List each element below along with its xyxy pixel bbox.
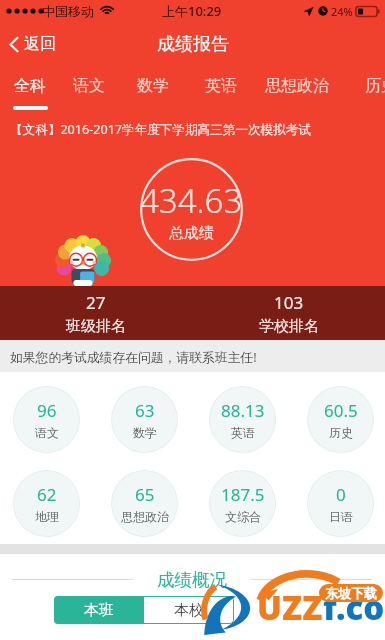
staticText: 东坡下载 <box>325 585 377 601</box>
staticText: U <box>257 585 282 630</box>
button[interactable]: 语文 <box>67 66 111 112</box>
button[interactable]: 全科 <box>8 66 52 112</box>
button[interactable]: 27 <box>0 286 192 340</box>
staticText: 英语 <box>205 76 237 96</box>
staticText: 班级排名 <box>66 317 126 336</box>
button[interactable]: 96 <box>13 386 80 453</box>
staticText: 返回 <box>24 34 56 54</box>
staticText: 【文科】2016-2017学年度下学期高三第一次模拟考试 <box>10 121 311 138</box>
button[interactable]: 65 <box>111 470 178 537</box>
button[interactable]: 103 <box>192 286 385 340</box>
staticText: 27 <box>86 291 106 314</box>
staticText: 成绩报告 <box>157 33 229 56</box>
staticText: 63 <box>135 399 155 422</box>
staticText: 历史 <box>365 76 385 96</box>
button[interactable]: 0 <box>307 470 374 537</box>
staticText: 上午10:29 <box>162 2 222 20</box>
button[interactable]: 62 <box>13 470 80 537</box>
staticText: 文综合 <box>225 509 261 524</box>
staticText: 地理 <box>35 509 59 524</box>
staticText: f.com <box>323 585 385 630</box>
staticText: 语文 <box>73 76 105 96</box>
button[interactable]: 187.5 <box>209 470 276 537</box>
button[interactable]: 返回 <box>0 22 385 66</box>
staticText: 全科 <box>14 76 46 96</box>
staticText: 本班 <box>84 601 114 620</box>
staticText: 数学 <box>133 425 157 440</box>
staticText: 成绩概况 <box>157 569 227 591</box>
button[interactable]: 本班 <box>54 596 144 624</box>
staticText: ZZ <box>282 585 323 630</box>
button[interactable]: 本校 <box>144 596 234 624</box>
button[interactable]: 60.5 <box>307 386 374 453</box>
button[interactable]: 63 <box>111 386 178 453</box>
button[interactable]: 思想政治 <box>263 66 331 112</box>
staticText: 思想政治 <box>265 76 329 96</box>
staticText: 96 <box>37 399 57 422</box>
staticText: 如果您的考试成绩存在问题，请联系班主任! <box>10 348 257 365</box>
staticText: 65 <box>135 483 155 506</box>
staticText: 思想政治 <box>121 509 169 524</box>
staticText: 数学 <box>137 76 169 96</box>
staticText: 88.13 <box>221 399 265 422</box>
staticText: 62 <box>37 483 57 506</box>
staticText: 英语 <box>231 425 255 440</box>
staticText: 语文 <box>35 425 59 440</box>
staticText: 总成绩 <box>169 224 214 243</box>
button[interactable]: 英语 <box>199 66 243 112</box>
staticText: 24% <box>331 4 353 19</box>
staticText: 0 <box>336 483 346 506</box>
staticText: 日语 <box>329 509 353 524</box>
staticText: 103 <box>274 291 304 314</box>
staticText: 中国移动 <box>42 3 94 19</box>
staticText: 本校 <box>174 601 204 620</box>
staticText: 60.5 <box>324 399 358 422</box>
staticText: 187.5 <box>221 483 265 506</box>
staticText: 学校排名 <box>259 317 319 336</box>
button[interactable]: 数学 <box>131 66 175 112</box>
button[interactable]: 88.13 <box>209 386 276 453</box>
staticText: 历史 <box>329 425 353 440</box>
staticText: 434.63 <box>140 178 243 223</box>
button[interactable]: 历史 <box>359 66 385 112</box>
